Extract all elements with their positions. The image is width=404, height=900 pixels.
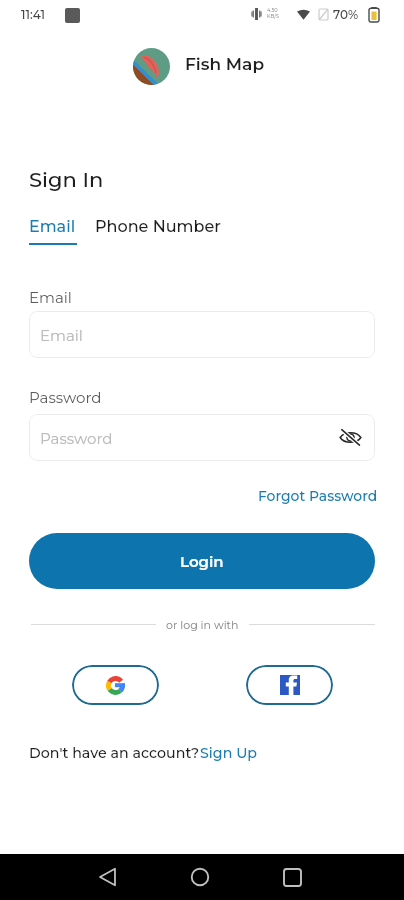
button[interactable]: Recent apps — [272, 854, 312, 900]
staticText: Password — [40, 429, 113, 447]
button[interactable]: Back — [87, 854, 127, 900]
staticText: 11:41 — [21, 7, 45, 22]
button[interactable]: Password — [29, 414, 375, 461]
button[interactable]: Log in with Google — [72, 665, 159, 705]
button[interactable]: Log in with Facebook — [246, 665, 333, 705]
staticText: Email — [29, 217, 76, 237]
button[interactable]: Login — [29, 533, 375, 589]
staticText: Email — [40, 326, 83, 344]
button[interactable]: Email — [29, 311, 375, 358]
button[interactable]: Forgot Password — [258, 488, 378, 505]
staticText: Email — [29, 288, 72, 306]
staticText: Don't have an account? — [29, 744, 200, 761]
staticText: Fish Map — [185, 54, 265, 75]
staticText: 4.50 KB/S — [267, 7, 280, 19]
staticText: Login — [180, 552, 224, 570]
staticText: or log in with — [166, 618, 239, 631]
button[interactable]: Show password — [339, 426, 362, 449]
staticText: Sign In — [29, 167, 104, 193]
button[interactable]: Sign Up — [200, 744, 258, 761]
button[interactable]: Home — [180, 854, 220, 900]
staticText: Password — [29, 388, 102, 406]
staticText: 70% — [333, 7, 359, 22]
button[interactable]: Email — [29, 217, 77, 245]
button[interactable]: Phone Number — [95, 217, 221, 237]
